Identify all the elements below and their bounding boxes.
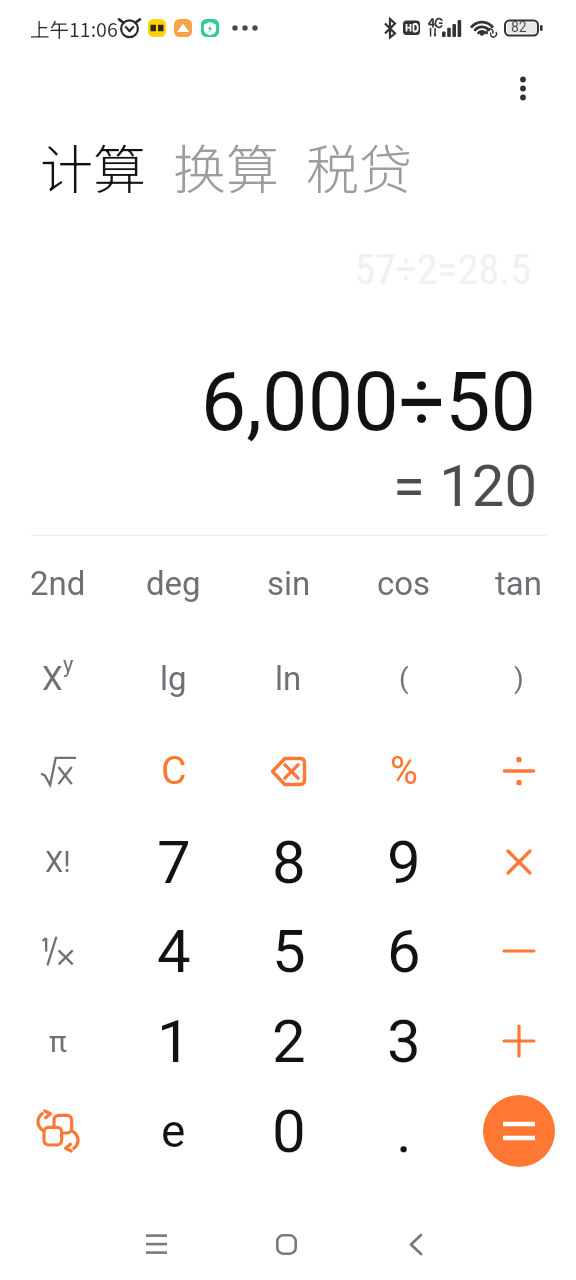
- staticText: e: [161, 1104, 186, 1158]
- button[interactable]: lg: [116, 632, 231, 724]
- staticText: 3: [387, 1006, 421, 1076]
- button[interactable]: π: [0, 995, 116, 1087]
- staticText: π: [49, 1024, 67, 1059]
- staticText: deg: [146, 564, 201, 603]
- staticText: 1: [157, 1006, 191, 1076]
- staticText: (: [399, 662, 409, 695]
- button[interactable]: Equals: [483, 1095, 555, 1167]
- button[interactable]: More options: [496, 60, 550, 114]
- button[interactable]: (: [346, 632, 461, 724]
- button[interactable]: 8: [231, 816, 346, 908]
- button[interactable]: X: [0, 632, 116, 724]
- staticText: cos: [377, 564, 431, 603]
- button[interactable]: Backspace: [231, 725, 346, 817]
- staticText: .: [396, 1096, 412, 1166]
- staticText: = 120: [0, 452, 537, 520]
- button[interactable]: 6: [346, 905, 461, 997]
- staticText: 57÷2=28.5: [0, 245, 531, 294]
- button[interactable]: 5: [231, 905, 346, 997]
- staticText: 9: [387, 827, 421, 897]
- staticText: 6,000÷50: [0, 355, 536, 450]
- button[interactable]: 3: [346, 995, 461, 1087]
- button[interactable]: 9: [346, 816, 461, 908]
- button[interactable]: X!: [0, 816, 116, 908]
- button[interactable]: Home: [246, 1208, 326, 1280]
- button[interactable]: sin: [231, 537, 346, 629]
- staticText: 2: [272, 1006, 306, 1076]
- staticText: X!: [45, 845, 71, 879]
- staticText: 4: [157, 916, 191, 986]
- button[interactable]: 2: [231, 995, 346, 1087]
- staticText: 上午11:06: [30, 14, 118, 42]
- button[interactable]: Divide: [461, 725, 576, 817]
- button[interactable]: 1: [116, 995, 231, 1087]
- staticText: tan: [495, 564, 542, 603]
- staticText: C: [161, 748, 187, 794]
- staticText: sin: [267, 564, 311, 603]
- staticText: 5: [272, 916, 306, 986]
- button[interactable]: .: [346, 1085, 461, 1177]
- button[interactable]: Plus: [461, 995, 576, 1087]
- staticText: 0: [272, 1096, 306, 1166]
- button[interactable]: deg: [116, 537, 231, 629]
- button[interactable]: C: [116, 725, 231, 817]
- button[interactable]: 计算: [40, 128, 146, 205]
- button[interactable]: 0: [231, 1085, 346, 1177]
- staticText: 6: [387, 916, 421, 986]
- button[interactable]: 4: [116, 905, 231, 997]
- button[interactable]: 税贷: [306, 128, 412, 205]
- button[interactable]: Square root: [0, 725, 116, 817]
- button[interactable]: 2nd: [0, 537, 116, 629]
- staticText: %: [390, 749, 418, 794]
- button[interactable]: Back: [376, 1208, 456, 1280]
- staticText: X: [42, 659, 63, 698]
- button[interactable]: Unit converter: [0, 1085, 116, 1177]
- button[interactable]: Minus: [461, 905, 576, 997]
- staticText: lg: [160, 659, 187, 698]
- button[interactable]: Recents: [116, 1208, 196, 1280]
- staticText: 7: [157, 827, 191, 897]
- button[interactable]: 7: [116, 816, 231, 908]
- button[interactable]: ln: [231, 632, 346, 724]
- button[interactable]: %: [346, 725, 461, 817]
- staticText: 8: [272, 827, 306, 897]
- staticText: y: [63, 652, 74, 678]
- staticText: 2nd: [30, 564, 86, 603]
- button[interactable]: Reciprocal: [0, 905, 116, 997]
- button[interactable]: 换算: [173, 128, 279, 205]
- button[interactable]: e: [116, 1085, 231, 1177]
- staticText: ): [514, 662, 524, 695]
- button[interactable]: Multiply: [461, 816, 576, 908]
- button[interactable]: ): [461, 632, 576, 724]
- staticText: 82: [511, 19, 527, 35]
- button[interactable]: tan: [461, 537, 576, 629]
- staticText: ln: [275, 659, 302, 698]
- button[interactable]: cos: [346, 537, 461, 629]
